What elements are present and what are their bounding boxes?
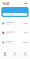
button[interactable]: Settings — [20, 49, 30, 59]
button[interactable] — [0, 19, 30, 28]
button[interactable] — [0, 28, 30, 38]
button[interactable]: Cards — [10, 49, 20, 59]
button[interactable]: Home — [0, 49, 10, 59]
button[interactable] — [0, 38, 30, 47]
staticText: Search — [6, 13, 14, 16]
staticText: 9:41 — [2, 1, 9, 6]
